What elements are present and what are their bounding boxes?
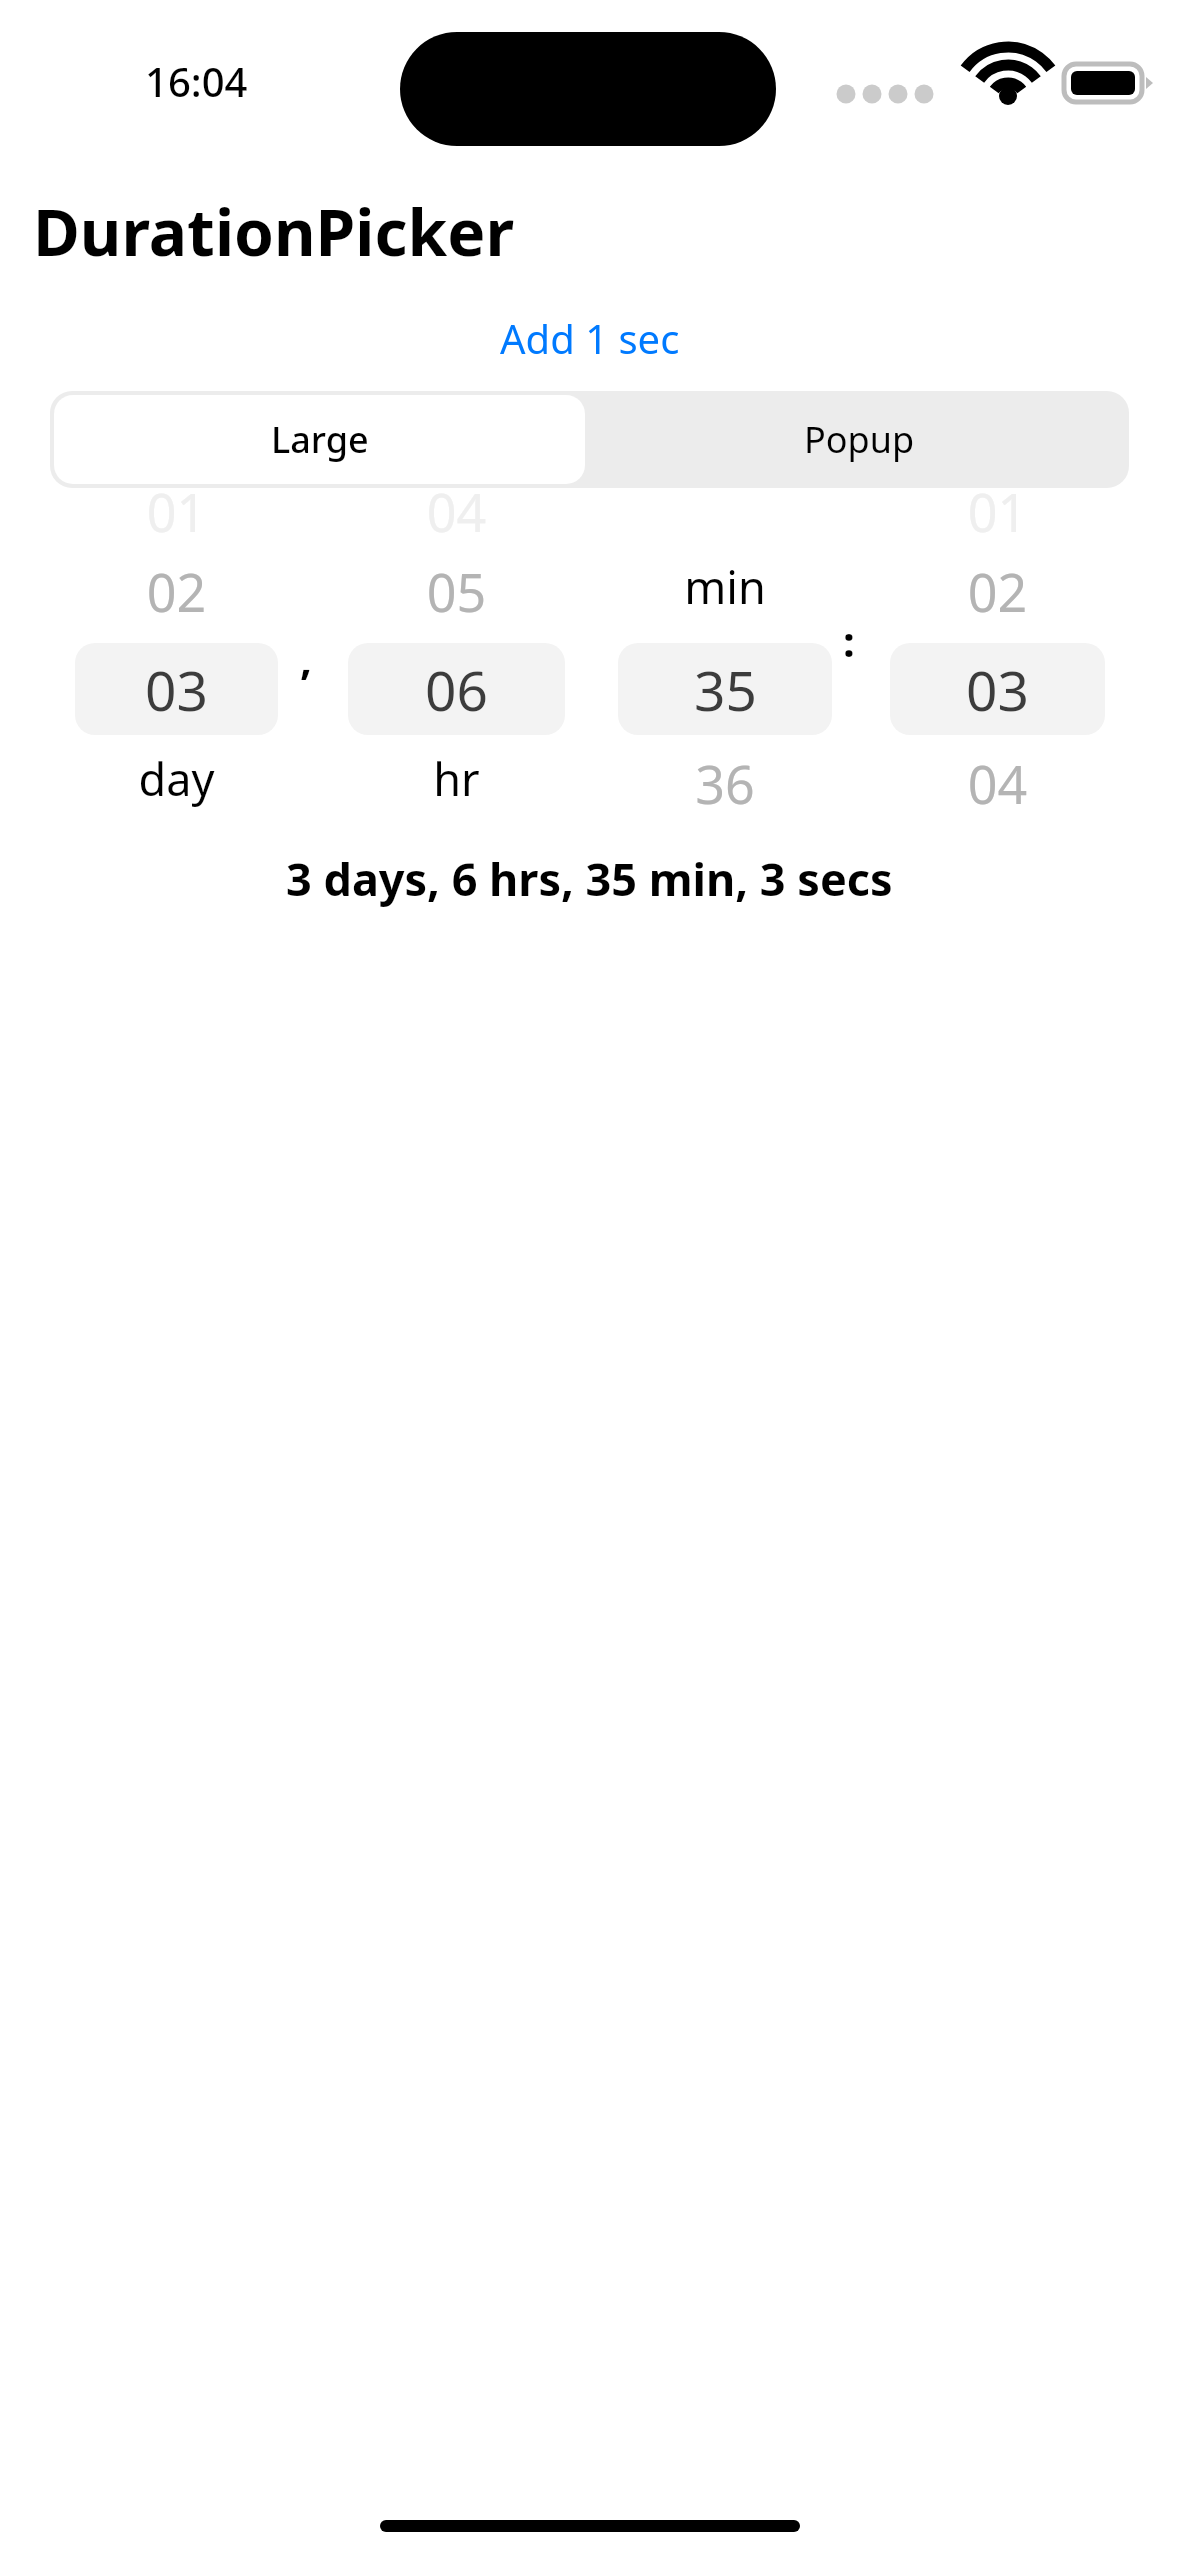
staticText: hr: [348, 748, 565, 809]
staticText: min: [618, 556, 832, 617]
staticText: ,: [300, 630, 312, 687]
staticText: 02: [890, 556, 1105, 627]
staticText: Add 1 sec: [500, 311, 680, 365]
staticText: 35: [694, 652, 757, 727]
staticText: 03: [145, 652, 208, 727]
staticText: 16:04: [145, 54, 248, 108]
staticText: 04: [348, 476, 565, 547]
button[interactable]: 01: [75, 500, 278, 840]
button[interactable]: Add 1 sec: [488, 305, 692, 371]
other: Status indicators: [838, 50, 1088, 116]
staticText: 05: [348, 556, 565, 627]
staticText: day: [75, 748, 278, 809]
staticText: 36: [618, 748, 832, 819]
staticText: 06: [425, 652, 488, 727]
button[interactable]: 04: [348, 500, 565, 840]
staticText: 01: [890, 476, 1105, 547]
button[interactable]: min: [618, 500, 832, 840]
staticText: :: [843, 612, 855, 669]
staticText: DurationPicker: [33, 188, 515, 275]
staticText: 3 days, 6 hrs, 35 min, 3 secs: [286, 848, 893, 909]
button[interactable]: 01: [890, 500, 1105, 840]
staticText: 04: [890, 748, 1105, 819]
button[interactable]: Popup: [589, 391, 1129, 488]
staticText: 01: [75, 476, 278, 547]
staticText: 03: [966, 652, 1029, 727]
staticText: Large: [271, 415, 369, 464]
button[interactable]: Large: [54, 395, 585, 484]
staticText: 02: [75, 556, 278, 627]
staticText: Popup: [804, 415, 915, 464]
